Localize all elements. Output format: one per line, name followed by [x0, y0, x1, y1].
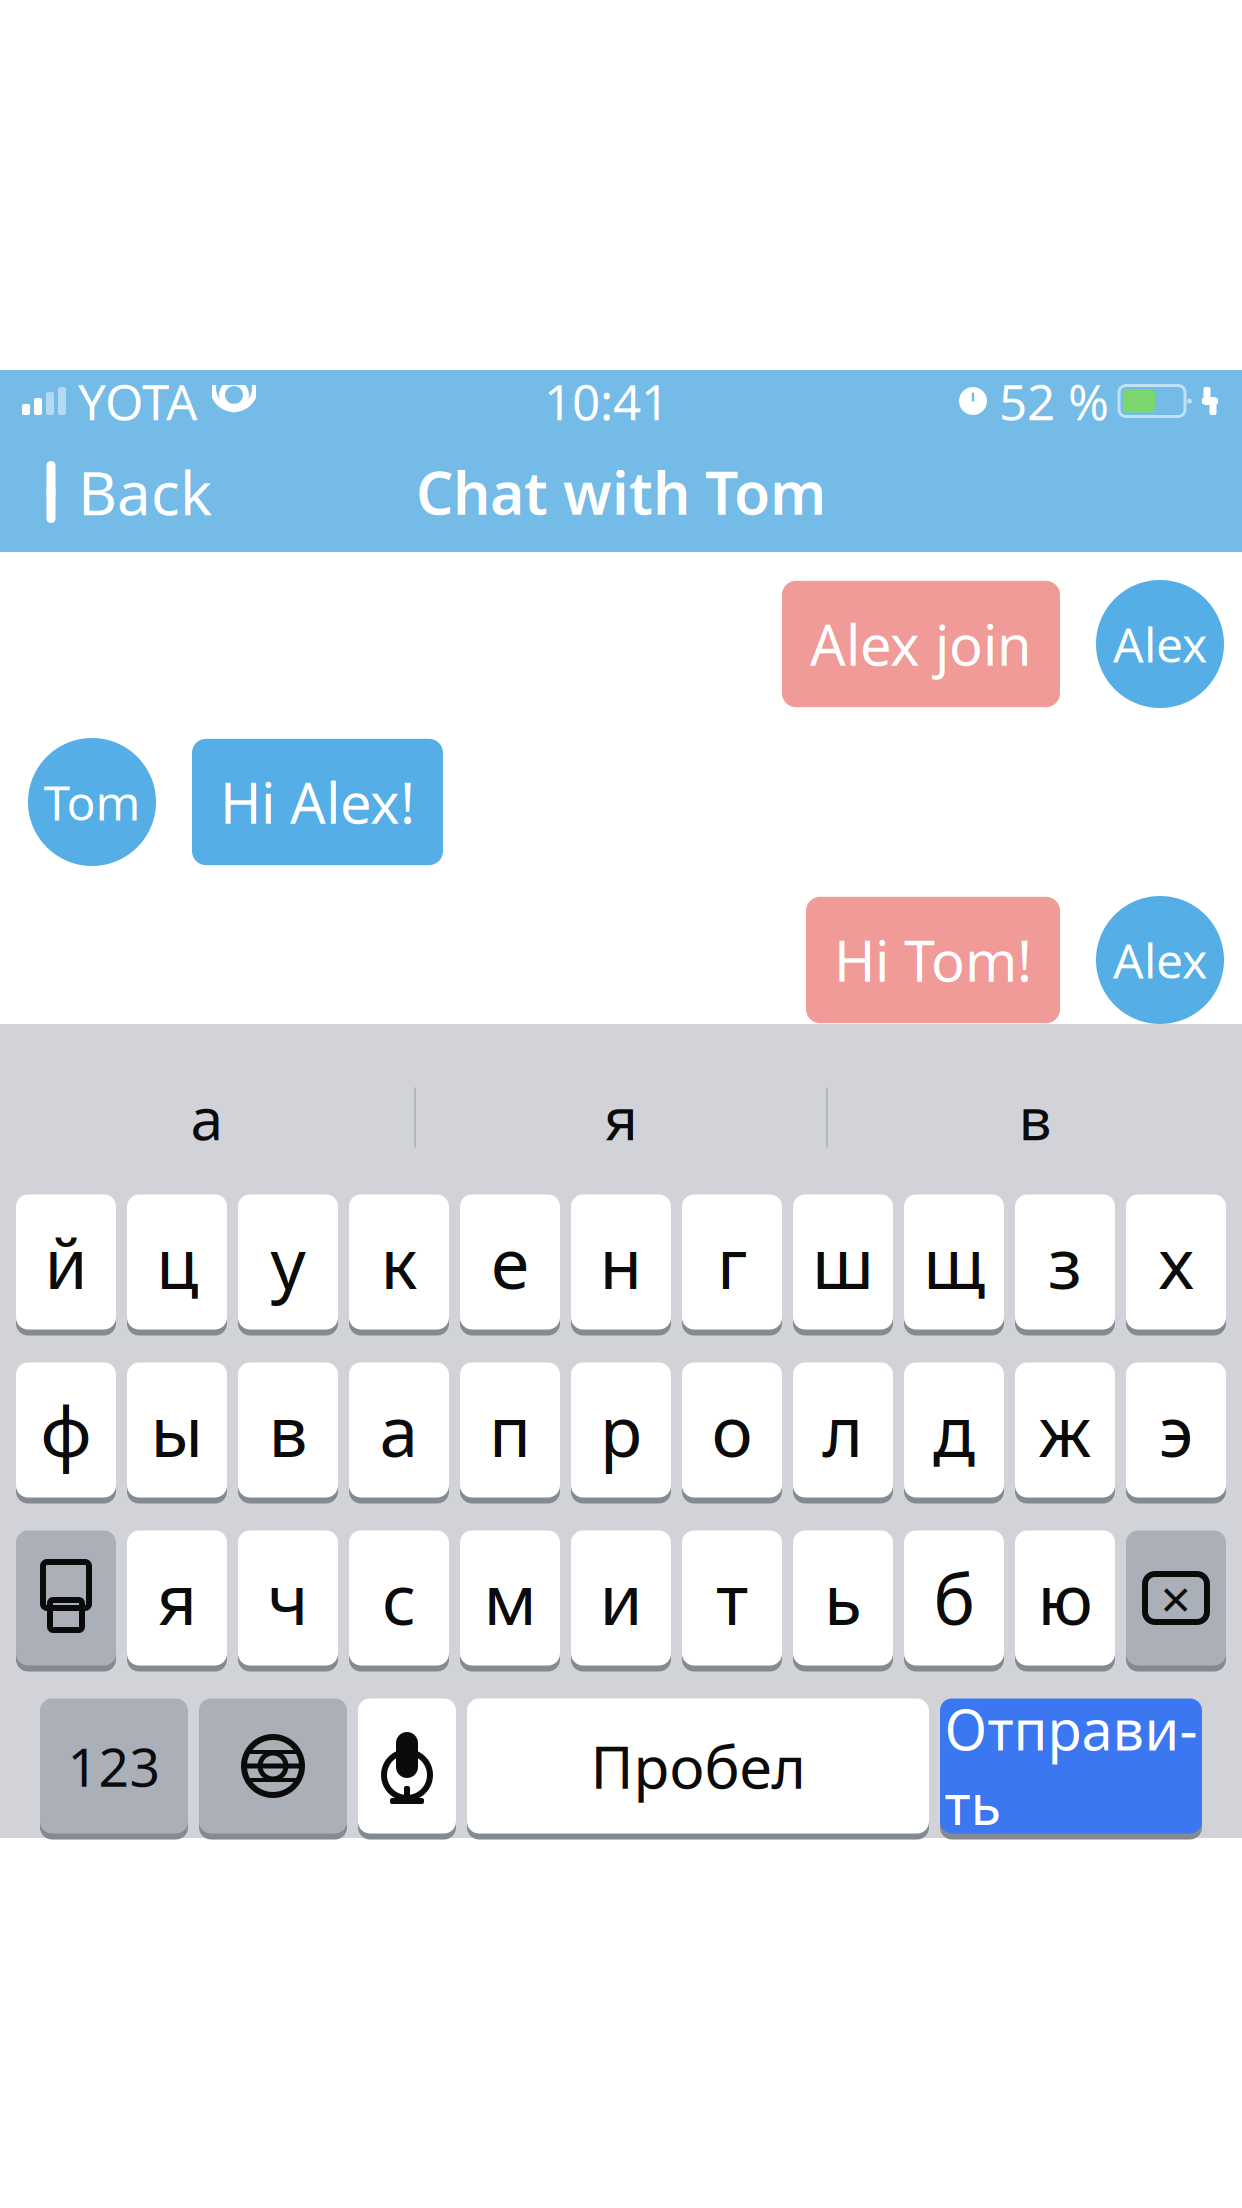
- button[interactable]: ю: [1015, 1530, 1115, 1671]
- staticText: м: [483, 1552, 536, 1644]
- staticText: Alex join: [810, 607, 1032, 681]
- button[interactable]: Отправить: [940, 1698, 1202, 1839]
- staticText: ш: [812, 1216, 874, 1308]
- button[interactable]: ц: [127, 1194, 227, 1335]
- button[interactable]: р: [571, 1362, 671, 1503]
- button[interactable]: Next keyboard: [199, 1698, 347, 1839]
- staticText: д: [933, 1384, 975, 1476]
- button[interactable]: ж: [1015, 1362, 1115, 1503]
- staticText: Отправить: [944, 1692, 1197, 1840]
- staticText: ×: [1160, 1563, 1191, 1633]
- staticText: н: [599, 1216, 642, 1308]
- staticText: ы: [150, 1384, 203, 1476]
- button[interactable]: т: [682, 1530, 782, 1671]
- button[interactable]: ш: [793, 1194, 893, 1335]
- staticText: т: [716, 1552, 748, 1644]
- staticText: 123: [67, 1731, 160, 1801]
- staticText: Пробел: [590, 1727, 805, 1805]
- button[interactable]: Dictate: [358, 1698, 456, 1839]
- staticText: э: [1159, 1384, 1193, 1476]
- staticText: л: [822, 1384, 863, 1476]
- button[interactable]: щ: [904, 1194, 1004, 1335]
- staticText: ч: [267, 1552, 308, 1644]
- staticText: к: [380, 1216, 417, 1308]
- button[interactable]: п: [460, 1362, 560, 1503]
- staticText: п: [489, 1384, 531, 1476]
- button[interactable]: а: [349, 1362, 449, 1503]
- staticText: YOTA: [78, 368, 198, 434]
- staticText: з: [1048, 1216, 1082, 1308]
- button[interactable]: з: [1015, 1194, 1115, 1335]
- button[interactable]: г: [682, 1194, 782, 1335]
- staticText: Chat with Tom: [416, 453, 826, 531]
- staticText: й: [44, 1216, 87, 1308]
- staticText: Hi Alex!: [220, 765, 415, 839]
- staticText: Back: [78, 452, 212, 532]
- button[interactable]: м: [460, 1530, 560, 1671]
- button[interactable]: Backspace: [1126, 1530, 1226, 1671]
- button[interactable]: л: [793, 1362, 893, 1503]
- button[interactable]: в: [828, 1058, 1242, 1176]
- staticText: у: [270, 1216, 305, 1308]
- staticText: в: [268, 1384, 307, 1476]
- button[interactable]: е: [460, 1194, 560, 1335]
- staticText: и: [599, 1552, 642, 1644]
- staticText: ь: [824, 1552, 862, 1644]
- button[interactable]: к: [349, 1194, 449, 1335]
- button[interactable]: я: [127, 1530, 227, 1671]
- staticText: ж: [1038, 1384, 1091, 1476]
- button[interactable]: и: [571, 1530, 671, 1671]
- staticText: Hi Tom!: [834, 923, 1032, 997]
- staticText: ц: [156, 1216, 198, 1308]
- button[interactable]: ь: [793, 1530, 893, 1671]
- button[interactable]: о: [682, 1362, 782, 1503]
- staticText: Tom: [43, 770, 140, 834]
- button[interactable]: й: [16, 1194, 116, 1335]
- button[interactable]: ч: [238, 1530, 338, 1671]
- button[interactable]: э: [1126, 1362, 1226, 1503]
- staticText: в: [1018, 1078, 1051, 1156]
- staticText: р: [600, 1384, 642, 1476]
- staticText: я: [157, 1552, 197, 1644]
- button[interactable]: с: [349, 1530, 449, 1671]
- staticText: Alex: [1113, 612, 1207, 676]
- staticText: Alex: [1113, 928, 1207, 992]
- staticText: я: [604, 1078, 638, 1156]
- staticText: е: [491, 1216, 529, 1308]
- staticText: а: [190, 1078, 223, 1156]
- staticText: 10:41: [544, 368, 669, 434]
- button[interactable]: Shift: [16, 1530, 116, 1671]
- button[interactable]: Пробел: [467, 1698, 929, 1839]
- button[interactable]: ы: [127, 1362, 227, 1503]
- button[interactable]: а: [0, 1058, 414, 1176]
- button[interactable]: д: [904, 1362, 1004, 1503]
- staticText: о: [711, 1384, 752, 1476]
- staticText: ф: [40, 1384, 91, 1476]
- button[interactable]: ф: [16, 1362, 116, 1503]
- staticText: щ: [923, 1216, 985, 1308]
- staticText: 52 %: [999, 368, 1109, 434]
- staticText: г: [717, 1216, 747, 1308]
- staticText: х: [1158, 1216, 1193, 1308]
- button[interactable]: я: [416, 1058, 826, 1176]
- button[interactable]: б: [904, 1530, 1004, 1671]
- button[interactable]: Back: [0, 444, 230, 540]
- button[interactable]: у: [238, 1194, 338, 1335]
- button[interactable]: 123: [40, 1698, 188, 1839]
- button[interactable]: н: [571, 1194, 671, 1335]
- button[interactable]: в: [238, 1362, 338, 1503]
- button[interactable]: х: [1126, 1194, 1226, 1335]
- staticText: ю: [1037, 1552, 1092, 1644]
- staticText: б: [933, 1552, 974, 1644]
- staticText: с: [382, 1552, 416, 1644]
- staticText: а: [379, 1384, 418, 1476]
